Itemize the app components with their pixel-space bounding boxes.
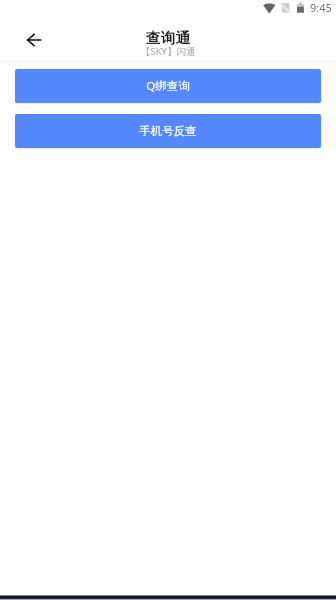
staticText: 【SKY】闪通 bbox=[141, 45, 196, 58]
staticText: Q绑查询 bbox=[146, 78, 190, 94]
staticText: 手机号反查 bbox=[139, 124, 197, 138]
staticText: 9:45 bbox=[310, 0, 332, 15]
button[interactable]: 手机号反查 bbox=[15, 114, 321, 148]
button[interactable]: Q绑查询 bbox=[15, 69, 321, 103]
button[interactable]: 返回 bbox=[16, 22, 52, 58]
staticText: 查询通 bbox=[146, 29, 191, 48]
